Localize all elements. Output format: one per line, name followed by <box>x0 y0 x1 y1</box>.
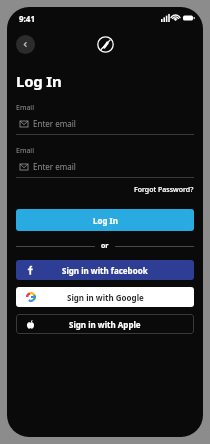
button[interactable]: Log In <box>16 209 194 231</box>
staticText: Sign in with Google <box>67 292 144 303</box>
staticText: Email <box>16 103 34 113</box>
button[interactable]: Sign in with facebook <box>16 260 194 280</box>
staticText: Enter email <box>33 118 76 129</box>
button[interactable]: Back <box>16 35 35 54</box>
button[interactable]: Forgot Password? <box>16 185 194 195</box>
staticText: 9:41 <box>19 13 35 24</box>
staticText: Enter email <box>33 161 76 172</box>
staticText: Forgot Password? <box>134 185 194 195</box>
button[interactable]: Email <box>16 103 194 135</box>
staticText: Email <box>16 146 34 156</box>
button[interactable]: Email <box>16 146 194 178</box>
button[interactable]: Sign in with Google <box>16 287 194 307</box>
staticText: Sign in with Apple <box>69 319 141 330</box>
button[interactable]: Sign in with Apple <box>16 314 194 334</box>
staticText: or <box>101 241 109 251</box>
staticText: Sign in with facebook <box>62 265 148 276</box>
staticText: Log In <box>93 215 118 226</box>
staticText: Log In <box>16 71 62 91</box>
